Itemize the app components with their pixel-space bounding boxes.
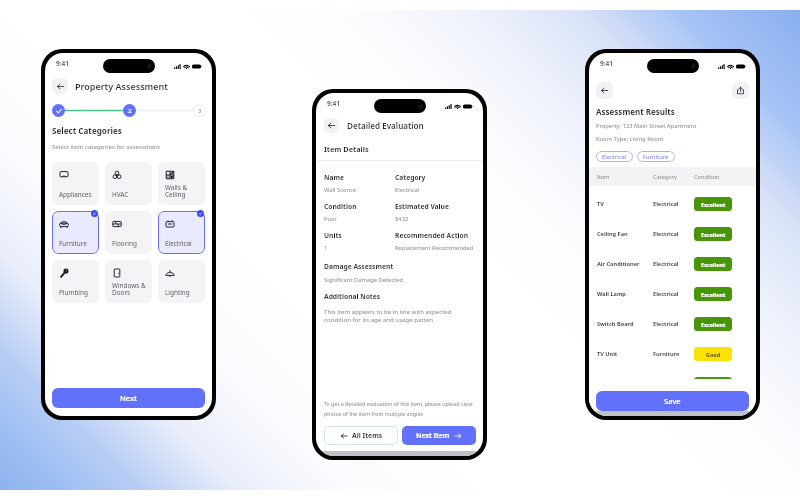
staticText: Excellent: [701, 291, 726, 298]
button[interactable]: Electrical: [596, 151, 633, 162]
staticText: Poor: [324, 215, 337, 223]
button[interactable]: Electrical: [158, 211, 205, 254]
button[interactable]: TV: [589, 197, 756, 211]
staticText: To get a detailed evaluation of this ite…: [324, 400, 473, 417]
button[interactable]: Save: [596, 391, 749, 411]
button[interactable]: Next: [52, 388, 205, 408]
staticText: Category: [653, 173, 694, 181]
staticText: Property: 123 Main Street Apartment: [596, 122, 697, 130]
staticText: Electrical: [165, 239, 192, 248]
staticText: Select item categories for assessment: [52, 142, 160, 150]
staticText: $432: [395, 215, 409, 223]
button[interactable]: Lighting: [158, 260, 205, 303]
button[interactable]: Ceiling Fan: [589, 227, 756, 241]
staticText: Room Type: Living Room: [596, 135, 664, 143]
staticText: HVAC: [112, 190, 129, 199]
staticText: 3: [198, 107, 202, 115]
staticText: Replacement Recommended: [395, 244, 474, 252]
button[interactable]: All Items: [324, 426, 398, 445]
staticText: Electrical: [653, 320, 694, 328]
staticText: Electrical: [653, 230, 694, 238]
staticText: Save: [664, 396, 681, 406]
button[interactable]: Wall Lamp: [589, 287, 756, 301]
button[interactable]: Share: [732, 82, 749, 99]
staticText: Category: [395, 173, 426, 182]
staticText: Excellent: [701, 261, 726, 268]
button[interactable]: HVAC: [105, 162, 152, 205]
staticText: 9:41: [600, 59, 613, 68]
button[interactable]: Walls & Ceiling: [158, 162, 205, 205]
staticText: 2: [128, 107, 132, 115]
staticText: Plumbing: [59, 288, 88, 297]
staticText: Furniture: [653, 350, 694, 358]
button[interactable]: Flooring: [105, 211, 152, 254]
button[interactable]: Back: [596, 82, 613, 99]
staticText: TV: [597, 200, 653, 208]
button[interactable]: Sofa: [589, 377, 756, 391]
staticText: Electrical: [653, 260, 694, 268]
staticText: 1: [324, 244, 328, 252]
staticText: Electrical: [653, 290, 694, 298]
staticText: Damage Assessment: [324, 262, 394, 271]
button[interactable]: Furniture: [637, 151, 675, 162]
button[interactable]: Windows & Doors: [105, 260, 152, 303]
staticText: Select Categories: [52, 125, 122, 136]
staticText: Wall Lamp: [597, 290, 653, 298]
staticText: Name: [324, 173, 344, 182]
staticText: Estimated Value: [395, 202, 449, 211]
staticText: Excellent: [701, 231, 726, 238]
staticText: Assessment Results: [596, 106, 675, 117]
staticText: Lighting: [165, 288, 190, 297]
staticText: Appliances: [59, 190, 92, 199]
staticText: Significant Damage Detected: [324, 276, 404, 284]
button[interactable]: Back: [52, 78, 68, 94]
button[interactable]: Next Item: [402, 426, 476, 445]
button[interactable]: TV Unit: [589, 347, 756, 361]
button[interactable]: Furniture: [52, 211, 99, 254]
button[interactable]: Air Conditioner: [589, 257, 756, 271]
staticText: Electrical: [395, 186, 420, 194]
staticText: Recommended Action: [395, 231, 469, 240]
staticText: Item Details: [324, 144, 369, 154]
staticText: Walls & Ceiling: [165, 183, 188, 199]
staticText: Property Assessment: [75, 80, 168, 92]
staticText: Electrical: [602, 153, 627, 161]
staticText: Next Item: [416, 431, 450, 440]
button[interactable]: Plumbing: [52, 260, 99, 303]
staticText: Furniture: [643, 153, 669, 161]
staticText: Units: [324, 231, 342, 240]
staticText: 9:41: [56, 59, 69, 68]
staticText: Next: [120, 393, 137, 403]
staticText: 9:41: [327, 99, 340, 108]
staticText: All Items: [352, 431, 383, 440]
button[interactable]: Switch Board: [589, 317, 756, 331]
staticText: This item appears to be in line with exp…: [324, 307, 452, 324]
staticText: Condition: [324, 202, 357, 211]
staticText: Additional Notes: [324, 292, 381, 301]
staticText: Item: [597, 173, 653, 181]
button[interactable]: Appliances: [52, 162, 99, 205]
staticText: Furniture: [59, 239, 87, 248]
staticText: Excellent: [701, 201, 726, 208]
staticText: Windows & Doors: [112, 281, 146, 297]
staticText: Detailed Evaluation: [347, 120, 424, 131]
staticText: Condition: [694, 173, 756, 181]
staticText: Electrical: [653, 200, 694, 208]
staticText: TV Unit: [597, 350, 653, 358]
staticText: Flooring: [112, 239, 137, 248]
button[interactable]: Back: [324, 118, 339, 133]
staticText: Excellent: [701, 321, 726, 328]
staticText: Wall Sconce: [324, 186, 357, 194]
staticText: Good: [706, 351, 721, 358]
staticText: Ceiling Fan: [597, 230, 653, 238]
staticText: Air Conditioner: [597, 260, 653, 268]
staticText: Switch Board: [597, 320, 653, 328]
